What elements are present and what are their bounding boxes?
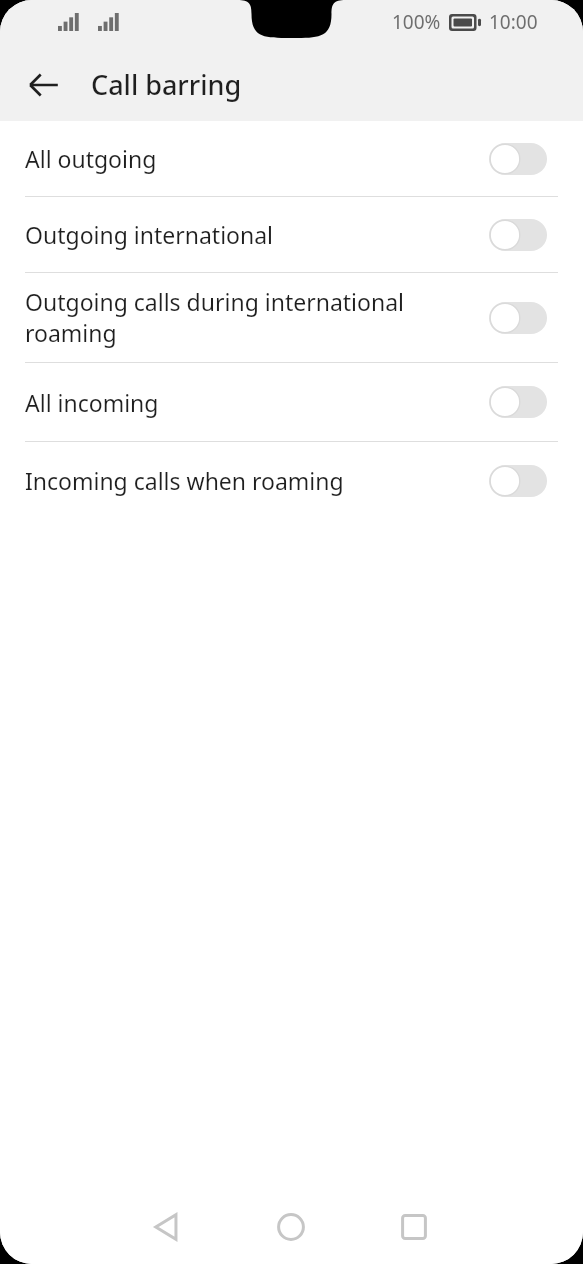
button[interactable]: Toggle	[489, 219, 547, 251]
staticText: All incoming	[25, 387, 481, 418]
button[interactable]: Toggle	[489, 465, 547, 497]
staticText: 10:00	[489, 9, 538, 35]
button[interactable]: Toggle	[489, 386, 547, 418]
button[interactable]: Incoming calls when roaming	[0, 442, 583, 519]
button[interactable]: Toggle	[489, 143, 547, 175]
staticText: Outgoing calls during international roam…	[25, 286, 481, 349]
button[interactable]: All outgoing	[0, 121, 583, 196]
button[interactable]: Back	[16, 57, 72, 113]
button[interactable]: Back	[141, 1201, 193, 1253]
staticText: Call barring	[91, 66, 242, 103]
button[interactable]: Toggle	[489, 302, 547, 334]
staticText: 100%	[392, 9, 441, 35]
button[interactable]: Outgoing calls during international roam…	[0, 273, 583, 362]
button[interactable]: Recent apps	[388, 1201, 440, 1253]
button[interactable]: Outgoing international	[0, 197, 583, 272]
button[interactable]: Home	[265, 1201, 317, 1253]
staticText: Outgoing international	[25, 219, 481, 250]
staticText: Incoming calls when roaming	[25, 465, 481, 496]
staticText: All outgoing	[25, 143, 481, 174]
button[interactable]: All incoming	[0, 363, 583, 441]
